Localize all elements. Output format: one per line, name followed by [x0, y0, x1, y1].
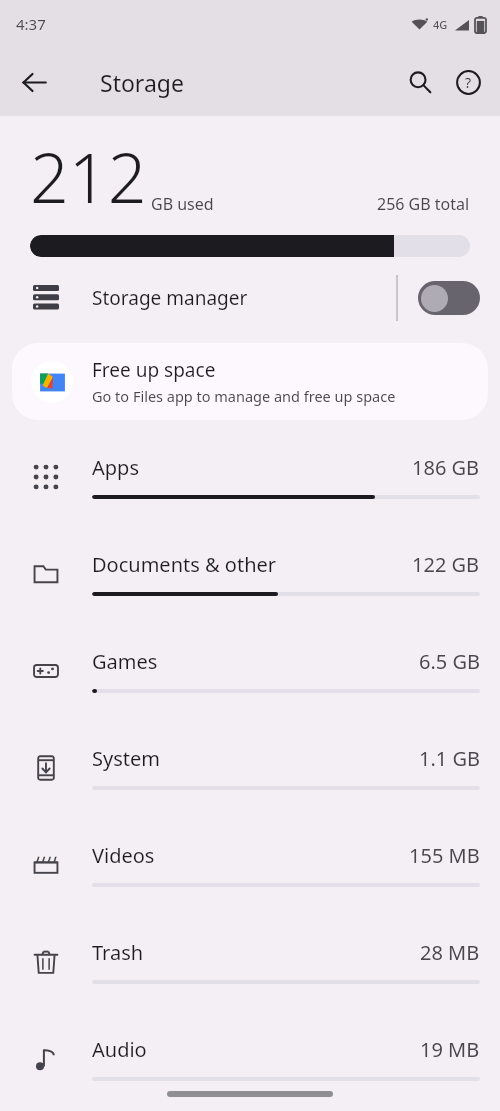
button[interactable]: Storage manager	[0, 265, 500, 331]
staticText: 212	[30, 130, 147, 223]
staticText: 122 GB	[412, 551, 480, 578]
button[interactable]: Games	[0, 622, 500, 719]
button[interactable]: Audio	[0, 1010, 500, 1107]
button[interactable]: Documents & other	[0, 525, 500, 622]
staticText: System	[92, 745, 160, 772]
button[interactable]: Free up space	[12, 343, 488, 420]
staticText: 1.1 GB	[419, 745, 480, 772]
staticText: Go to Files app to manage and free up sp…	[92, 386, 396, 406]
staticText: 186 GB	[412, 454, 480, 481]
staticText: 19 MB	[420, 1036, 480, 1063]
staticText: Documents & other	[92, 551, 277, 578]
staticText: Trash	[92, 939, 144, 966]
button[interactable]: Help	[444, 58, 492, 106]
staticText: 4:37	[16, 14, 46, 34]
staticText: 155 MB	[409, 842, 480, 869]
staticText: GB used	[151, 193, 214, 215]
button[interactable]: System	[0, 719, 500, 816]
button[interactable]: Trash	[0, 913, 500, 1010]
button[interactable]: Apps	[0, 428, 500, 525]
staticText: Storage	[100, 67, 184, 98]
button[interactable]: Videos	[0, 816, 500, 913]
button[interactable]: Back	[10, 58, 58, 106]
staticText: Videos	[92, 842, 155, 869]
staticText: 28 MB	[420, 939, 480, 966]
staticText: ?	[465, 73, 472, 92]
staticText: 4G	[433, 17, 448, 32]
staticText: 256 GB total	[377, 193, 470, 215]
staticText: Games	[92, 648, 158, 675]
staticText: 6.5 GB	[419, 648, 480, 675]
staticText: Apps	[92, 454, 139, 481]
staticText: Storage manager	[92, 285, 248, 311]
staticText: Audio	[92, 1036, 147, 1063]
button[interactable]: Storage manager toggle	[418, 281, 480, 315]
button[interactable]: Search	[396, 58, 444, 106]
staticText: Free up space	[92, 357, 216, 383]
